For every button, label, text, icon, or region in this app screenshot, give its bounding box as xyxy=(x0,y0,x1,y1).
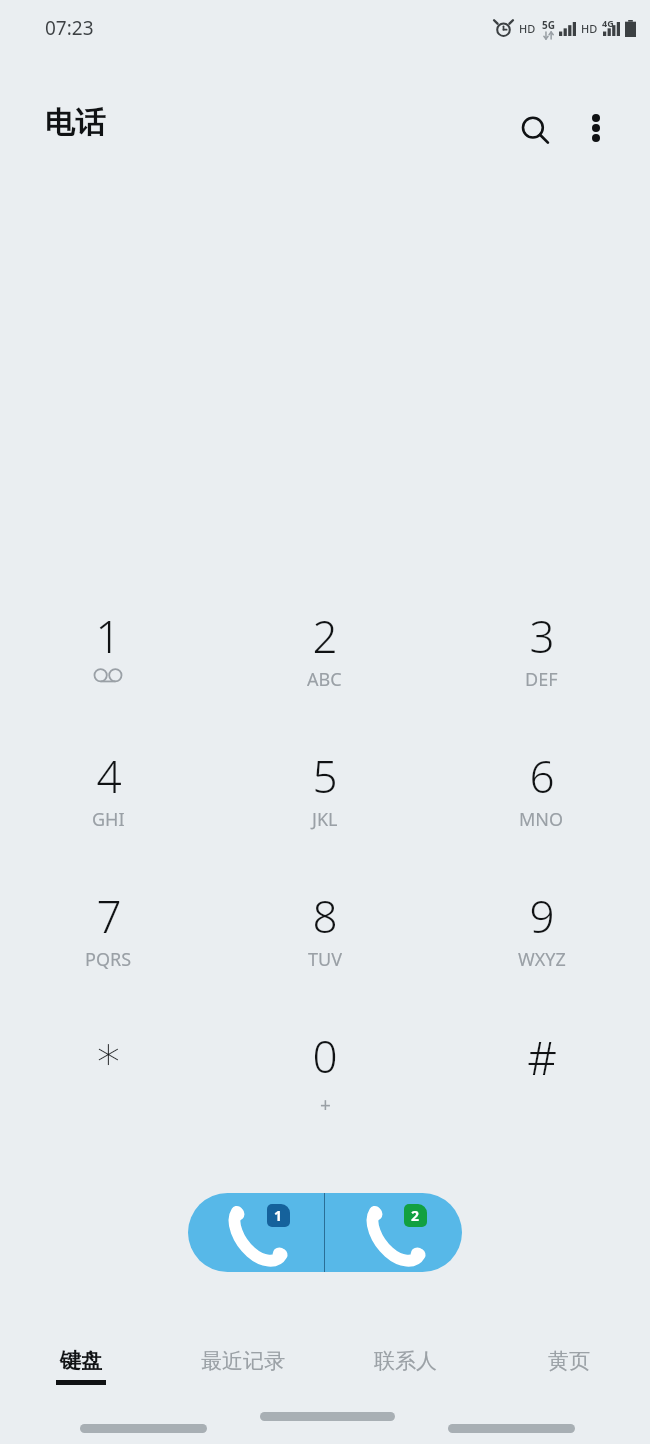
button[interactable]: 5 xyxy=(216,746,433,886)
staticText: TUV xyxy=(308,947,342,972)
staticText: GHI xyxy=(92,807,125,832)
button[interactable]: Call with SIM 1 xyxy=(188,1193,324,1272)
staticText: 2 xyxy=(411,1206,420,1225)
button[interactable]: Call with SIM 2 xyxy=(325,1193,462,1272)
staticText: 黄页 xyxy=(548,1348,590,1374)
staticText: 3 xyxy=(529,606,555,666)
staticText: HD xyxy=(519,21,536,36)
button[interactable]: 黄页 xyxy=(487,1338,650,1400)
staticText: 2 xyxy=(312,606,338,666)
staticText: 8 xyxy=(312,886,338,946)
staticText: PQRS xyxy=(85,947,132,972)
staticText: MNO xyxy=(519,807,564,832)
staticText: 联系人 xyxy=(374,1348,437,1374)
staticText: HD xyxy=(581,21,598,36)
staticText: 4G xyxy=(602,17,614,29)
staticText: ∗ xyxy=(94,1026,123,1080)
button[interactable]: 1 xyxy=(0,606,216,746)
staticText: DEF xyxy=(525,667,558,692)
staticText: 5G xyxy=(542,18,555,32)
button[interactable]: Search xyxy=(505,100,565,160)
button[interactable]: More options xyxy=(568,100,624,156)
staticText: ABC xyxy=(307,667,342,692)
button[interactable]: 7 xyxy=(0,886,216,1026)
button[interactable]: ∗ xyxy=(0,1026,216,1150)
staticText: 键盘 xyxy=(60,1348,102,1374)
staticText: 电话 xyxy=(45,104,105,142)
button[interactable]: 联系人 xyxy=(324,1338,487,1400)
staticText: 0 xyxy=(312,1026,338,1086)
staticText: 5 xyxy=(312,746,338,806)
staticText: 4 xyxy=(96,746,122,806)
button[interactable]: 最近记录 xyxy=(162,1338,324,1400)
staticText: # xyxy=(527,1026,557,1089)
button[interactable]: 6 xyxy=(433,746,650,886)
staticText: 1 xyxy=(274,1206,283,1225)
staticText: 7 xyxy=(96,886,122,946)
button[interactable]: 4 xyxy=(0,746,216,886)
button[interactable]: 0 xyxy=(216,1026,433,1150)
button[interactable]: 2 xyxy=(216,606,433,746)
staticText: 最近记录 xyxy=(201,1348,285,1374)
button[interactable]: 3 xyxy=(433,606,650,746)
button[interactable]: 9 xyxy=(433,886,650,1026)
staticText: 6 xyxy=(529,746,555,806)
button[interactable]: 键盘 xyxy=(0,1338,162,1400)
staticText: WXYZ xyxy=(518,947,566,972)
staticText: 07:23 xyxy=(45,15,94,41)
staticText: 1 xyxy=(95,606,121,666)
button[interactable]: # xyxy=(433,1026,650,1150)
button[interactable]: 8 xyxy=(216,886,433,1026)
staticText: + xyxy=(320,1092,331,1118)
staticText: JKL xyxy=(312,807,338,832)
staticText: 9 xyxy=(529,886,555,946)
